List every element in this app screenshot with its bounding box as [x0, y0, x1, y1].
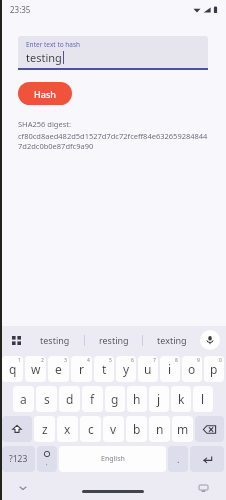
staticText: English	[101, 454, 125, 464]
button[interactable]: b	[126, 416, 147, 442]
button[interactable]: Emoji and comma	[37, 446, 57, 472]
staticText: e	[55, 361, 62, 377]
staticText: w	[31, 361, 41, 377]
staticText: x	[64, 421, 71, 437]
staticText: Hash	[34, 88, 56, 100]
button[interactable]: Hide keyboard	[14, 479, 32, 497]
button[interactable]: .	[168, 446, 188, 472]
staticText: d	[66, 391, 74, 407]
staticText: n	[156, 421, 164, 437]
staticText: testing	[26, 50, 62, 65]
staticText: 7	[153, 357, 156, 364]
staticText: ,	[46, 459, 48, 467]
button[interactable]: q	[2, 356, 23, 382]
staticText: .	[177, 453, 180, 465]
button[interactable]: r	[71, 356, 92, 382]
staticText: s	[44, 391, 50, 407]
staticText: resting	[99, 334, 129, 346]
button[interactable]: Backspace	[195, 416, 224, 442]
button[interactable]: y	[116, 356, 136, 382]
staticText: v	[110, 421, 117, 437]
staticText: b	[133, 421, 141, 437]
staticText: 3	[64, 357, 67, 364]
button[interactable]: p	[204, 356, 224, 382]
staticText: 2	[41, 357, 44, 364]
button[interactable]: o	[182, 356, 202, 382]
button[interactable]: Switch keyboard	[194, 479, 212, 497]
staticText: testing	[40, 334, 70, 346]
button[interactable]: f	[82, 386, 103, 412]
staticText: p	[210, 361, 218, 377]
staticText: 0	[219, 357, 222, 364]
button[interactable]: ?123	[2, 446, 35, 472]
staticText: 4	[87, 357, 90, 364]
button[interactable]: z	[34, 416, 55, 442]
staticText: g	[111, 391, 119, 407]
button[interactable]: v	[103, 416, 124, 442]
button[interactable]: x	[57, 416, 78, 442]
staticText: f	[90, 391, 95, 407]
button[interactable]: s	[36, 386, 57, 412]
staticText: 7d2dc0b0e87dfc9a90	[18, 141, 94, 151]
staticText: 6	[131, 357, 134, 364]
button[interactable]: m	[172, 416, 193, 442]
staticText: 23:35	[10, 4, 31, 15]
staticText: u	[144, 361, 152, 377]
staticText: a	[20, 391, 27, 407]
button[interactable]: j	[149, 386, 169, 412]
staticText: z	[42, 421, 48, 437]
staticText: r	[79, 361, 84, 377]
button[interactable]: texting	[143, 326, 200, 354]
staticText: k	[178, 391, 185, 407]
button[interactable]: c	[80, 416, 101, 442]
staticText: m	[177, 421, 189, 437]
staticText: c	[88, 421, 94, 437]
button[interactable]: a	[13, 386, 34, 412]
button[interactable]: e	[48, 356, 69, 382]
staticText: o	[188, 361, 196, 377]
staticText: t	[102, 361, 107, 377]
button[interactable]: Enter	[190, 446, 224, 472]
staticText: q	[9, 361, 17, 377]
button[interactable]: resting	[85, 326, 142, 354]
staticText: 8	[175, 357, 178, 364]
button[interactable]: l	[193, 386, 213, 412]
button[interactable]: testing	[26, 326, 84, 354]
button[interactable]: i	[160, 356, 180, 382]
button[interactable]: n	[149, 416, 170, 442]
button[interactable]: Hash	[18, 82, 72, 105]
button[interactable]: Voice input	[200, 330, 220, 350]
button[interactable]: t	[94, 356, 114, 382]
staticText: 1	[18, 357, 21, 364]
staticText: Enter text to hash	[26, 40, 81, 49]
button[interactable]: Enter text to hash	[18, 36, 208, 68]
button[interactable]: h	[127, 386, 147, 412]
button[interactable]: w	[25, 356, 46, 382]
staticText: 9	[197, 357, 200, 364]
staticText: ?123	[9, 453, 28, 465]
staticText: h	[133, 391, 141, 407]
button[interactable]: Keyboard options	[6, 330, 26, 350]
staticText: SHA256 digest:	[18, 119, 71, 129]
button[interactable]: k	[171, 386, 191, 412]
button[interactable]: English	[59, 446, 166, 472]
button[interactable]: Shift	[2, 416, 32, 442]
staticText: 5	[109, 357, 112, 364]
staticText: l	[201, 391, 205, 407]
button[interactable]: d	[59, 386, 80, 412]
button[interactable]: g	[105, 386, 125, 412]
staticText: y	[123, 361, 130, 377]
staticText: i	[168, 361, 172, 377]
staticText: j	[157, 391, 161, 407]
button[interactable]: u	[138, 356, 158, 382]
staticText: texting	[157, 334, 187, 346]
staticText: cf80cd8aed482d5d1527d7dc72fceff84e632659…	[18, 131, 208, 141]
